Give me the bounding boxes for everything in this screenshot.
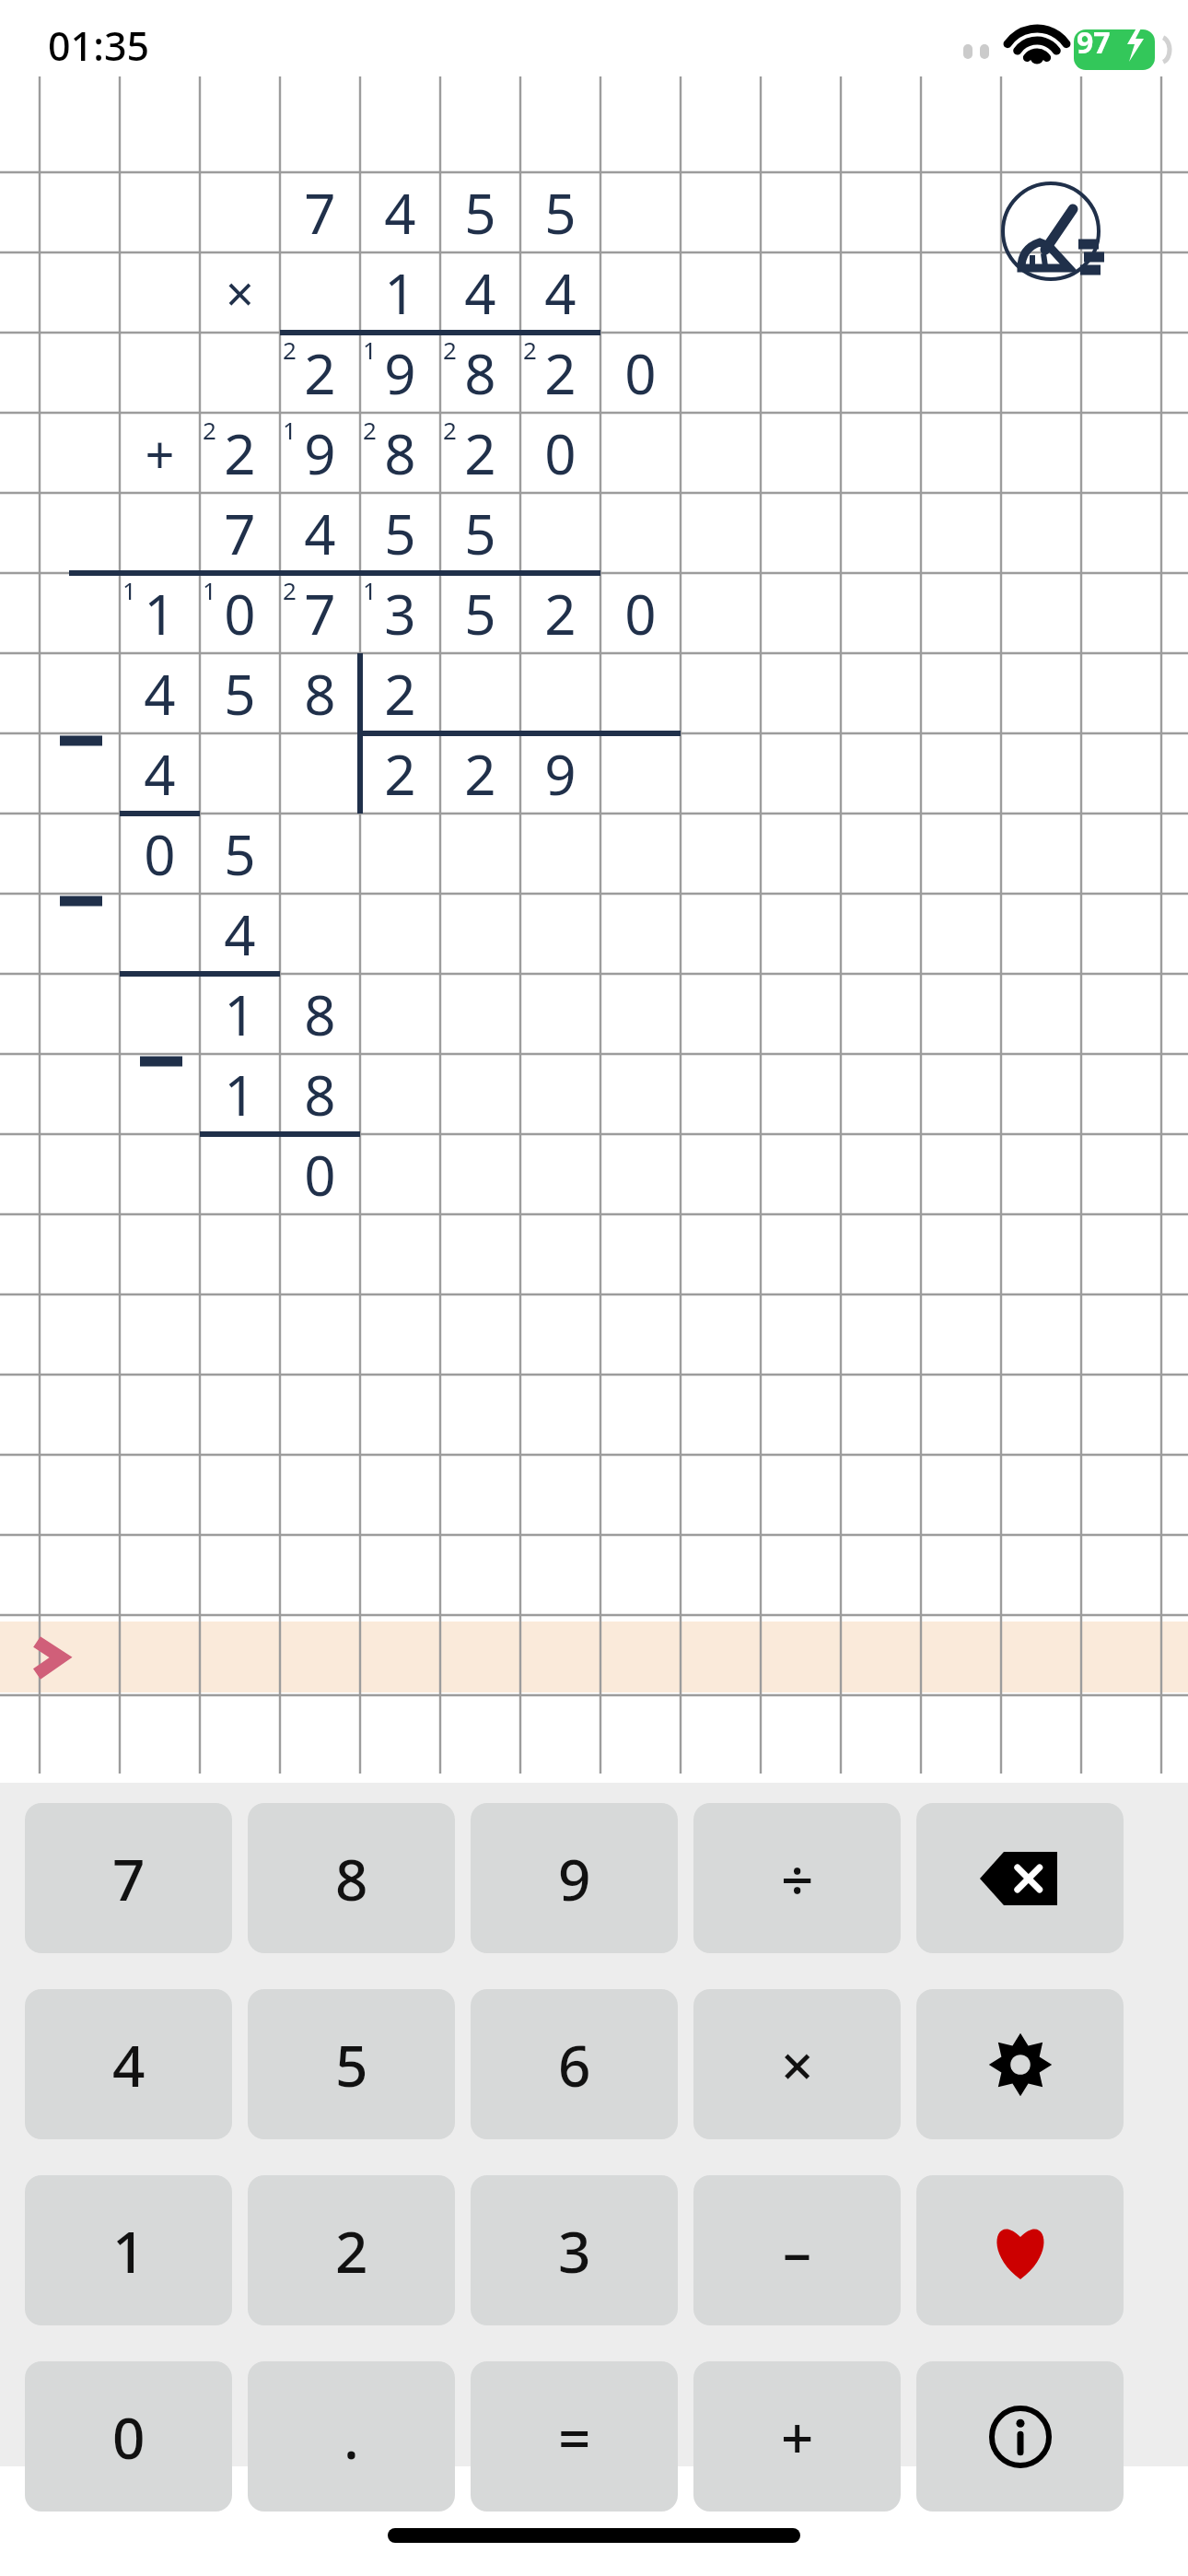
- staticText: 2: [384, 656, 416, 732]
- staticText: 2: [335, 2212, 368, 2289]
- staticText: 4: [464, 255, 496, 331]
- button[interactable]: ×: [693, 1989, 901, 2139]
- staticText: 2: [363, 414, 377, 445]
- staticText: 2: [283, 574, 297, 605]
- button[interactable]: 5: [248, 1989, 455, 2139]
- staticText: 4: [384, 175, 416, 251]
- staticText: 7: [304, 175, 336, 251]
- staticText: 8: [304, 656, 336, 732]
- button[interactable]: Clear: [1001, 181, 1101, 281]
- staticText: 1: [283, 414, 297, 445]
- staticText: 8: [384, 416, 416, 491]
- staticText: 9: [384, 335, 416, 411]
- staticText: 1: [224, 977, 256, 1052]
- staticText: 2: [443, 334, 457, 365]
- staticText: 0: [624, 335, 657, 411]
- staticText: 3: [384, 576, 416, 651]
- staticText: 97: [1077, 22, 1111, 63]
- staticText: 2: [523, 334, 537, 365]
- staticText: 01:35: [48, 18, 150, 73]
- staticText: 3: [558, 2212, 591, 2289]
- staticText: 1: [203, 574, 216, 605]
- staticText: 1: [144, 576, 176, 651]
- staticText: 2: [544, 576, 577, 651]
- staticText: 1: [384, 255, 416, 331]
- staticText: 0: [112, 2398, 146, 2476]
- staticText: 4: [112, 2026, 146, 2103]
- button[interactable]: Favorite: [916, 2175, 1124, 2325]
- button[interactable]: Backspace: [916, 1803, 1124, 1953]
- staticText: 6: [558, 2026, 591, 2103]
- staticText: ÷: [781, 1840, 814, 1917]
- staticText: 7: [224, 496, 256, 571]
- button[interactable]: 4: [25, 1989, 232, 2139]
- staticText: ×: [781, 2026, 814, 2103]
- staticText: 1: [224, 1057, 256, 1132]
- staticText: ×: [226, 259, 254, 327]
- staticText: 1: [122, 574, 136, 605]
- staticText: 0: [544, 416, 577, 491]
- staticText: 9: [544, 736, 577, 812]
- button[interactable]: 7: [25, 1803, 232, 1953]
- staticText: 1: [363, 334, 377, 365]
- staticText: 4: [304, 496, 336, 571]
- staticText: 0: [144, 816, 176, 892]
- staticText: 5: [464, 576, 496, 651]
- staticText: 5: [544, 175, 577, 251]
- button[interactable]: =: [471, 2361, 678, 2512]
- staticText: 7: [112, 1840, 146, 1917]
- button[interactable]: 3: [471, 2175, 678, 2325]
- staticText: 8: [304, 977, 336, 1052]
- button[interactable]: 9: [471, 1803, 678, 1953]
- button[interactable]: 1: [25, 2175, 232, 2325]
- staticText: 8: [464, 335, 496, 411]
- staticText: 1: [112, 2212, 146, 2289]
- staticText: .: [344, 2398, 359, 2476]
- staticText: 0: [304, 1137, 336, 1212]
- staticText: 2: [283, 334, 297, 365]
- staticText: =: [558, 2398, 591, 2476]
- staticText: 5: [224, 656, 256, 732]
- button[interactable]: 0: [25, 2361, 232, 2512]
- staticText: 5: [464, 175, 496, 251]
- staticText: 9: [558, 1840, 591, 1917]
- button[interactable]: .: [248, 2361, 455, 2512]
- button[interactable]: Settings: [916, 1989, 1124, 2139]
- staticText: 8: [335, 1840, 368, 1917]
- staticText: 0: [624, 576, 657, 651]
- staticText: 5: [224, 816, 256, 892]
- staticText: 2: [203, 414, 216, 445]
- staticText: 2: [224, 416, 256, 491]
- button[interactable]: –: [693, 2175, 901, 2325]
- staticText: 2: [384, 736, 416, 812]
- staticText: 2: [304, 335, 336, 411]
- button[interactable]: +: [693, 2361, 901, 2512]
- staticText: 5: [335, 2026, 368, 2103]
- staticText: 4: [224, 896, 256, 972]
- button[interactable]: 6: [471, 1989, 678, 2139]
- button[interactable]: Info: [916, 2361, 1124, 2512]
- staticText: 4: [544, 255, 577, 331]
- staticText: 2: [464, 416, 496, 491]
- button[interactable]: ÷: [693, 1803, 901, 1953]
- staticText: 2: [464, 736, 496, 812]
- button[interactable]: 2: [248, 2175, 455, 2325]
- staticText: 4: [144, 736, 176, 812]
- staticText: 5: [384, 496, 416, 571]
- staticText: 4: [144, 656, 176, 732]
- staticText: 5: [464, 496, 496, 571]
- staticText: +: [781, 2398, 814, 2476]
- button[interactable]: 8: [248, 1803, 455, 1953]
- staticText: –: [783, 2212, 812, 2289]
- staticText: 7: [304, 576, 336, 651]
- staticText: 0: [224, 576, 256, 651]
- staticText: 1: [363, 574, 377, 605]
- staticText: +: [145, 418, 175, 488]
- staticText: 9: [304, 416, 336, 491]
- staticText: 2: [443, 414, 457, 445]
- staticText: 2: [544, 335, 577, 411]
- staticText: 8: [304, 1057, 336, 1132]
